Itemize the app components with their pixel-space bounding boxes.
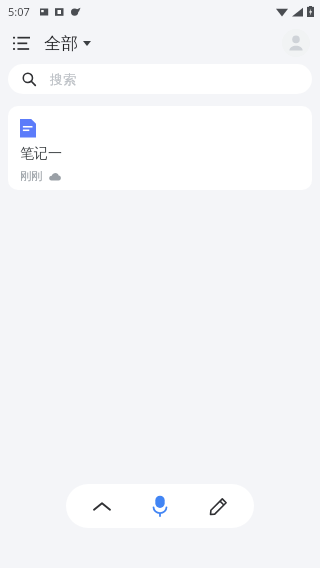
staticText: 搜索 — [50, 71, 76, 87]
button[interactable]: Expand — [80, 484, 124, 528]
button[interactable]: 全部 — [42, 29, 97, 58]
button[interactable]: 搜索 — [8, 64, 312, 94]
staticText: 刚刚 — [20, 169, 42, 183]
button[interactable]: 笔记一 — [8, 106, 312, 190]
staticText: 5:07 — [8, 4, 30, 19]
button[interactable]: Voice note — [138, 484, 182, 528]
button[interactable]: New note — [196, 484, 240, 528]
staticText: 全部 — [44, 33, 78, 54]
button[interactable]: Menu — [0, 22, 42, 64]
button[interactable]: Account — [282, 29, 310, 57]
staticText: 笔记一 — [20, 145, 62, 163]
